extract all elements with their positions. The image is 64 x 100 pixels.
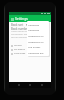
staticText: Settings — [15, 16, 28, 21]
staticText: Notebook — [28, 23, 40, 26]
button[interactable]: Set default value — [11, 48, 27, 52]
staticText: notebooks on — [28, 40, 44, 43]
button[interactable]: notebooks on — [28, 39, 48, 44]
button[interactable]: Book sort — [11, 23, 28, 27]
staticText: The Pocket — [28, 45, 41, 48]
button[interactable]: System navigation button — [28, 83, 32, 87]
button[interactable]: Notebook Nirvana — [28, 28, 48, 33]
button[interactable]: Notebook pac — [28, 50, 48, 55]
staticText: sed do eiusmod — [11, 36, 28, 39]
button[interactable]: System navigation button — [17, 83, 21, 87]
button[interactable]: The Pocket — [28, 44, 48, 49]
button[interactable]: Open navigation drawer — [9, 15, 51, 22]
button[interactable]: System navigation button — [40, 83, 44, 87]
button[interactable]: Open navigation drawer — [10, 17, 14, 21]
staticText: consectetur adipiscing elit — [11, 33, 38, 36]
staticText: Lorem ipsum dolor sit amet — [11, 30, 40, 33]
button[interactable]: notebooks on — [28, 33, 48, 38]
staticText: notebooks on — [28, 34, 44, 37]
staticText: Notebook Nirvana — [28, 28, 48, 33]
staticText: Book sort — [11, 23, 24, 27]
staticText: Book number — [11, 27, 29, 31]
button[interactable]: Notebook — [28, 22, 48, 27]
staticText: Set default value — [14, 48, 27, 52]
button[interactable]: Include name prefix — [11, 44, 27, 48]
staticText: Notebook pac — [28, 51, 44, 54]
staticText: Show page number — [14, 52, 27, 56]
staticText: Include name prefix — [14, 44, 27, 48]
button[interactable]: Show page number — [11, 52, 27, 56]
